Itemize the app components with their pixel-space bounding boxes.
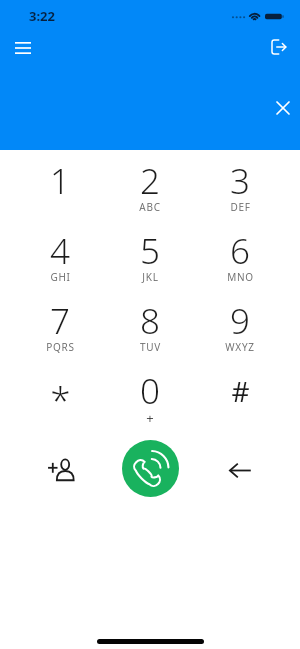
- staticText: ABC: [139, 200, 161, 214]
- staticText: DEF: [230, 200, 251, 214]
- button[interactable]: 1: [15, 150, 105, 220]
- staticText: 6: [230, 227, 250, 275]
- button[interactable]: 2: [105, 150, 195, 220]
- button[interactable]: 9: [195, 290, 285, 360]
- staticText: PQRS: [46, 340, 75, 354]
- staticText: *: [50, 374, 71, 424]
- button[interactable]: 4: [15, 220, 105, 290]
- staticText: 0: [140, 367, 160, 415]
- staticText: 7: [50, 297, 70, 345]
- staticText: 4: [50, 227, 70, 275]
- button[interactable]: Log out: [263, 31, 295, 63]
- staticText: JKL: [142, 270, 159, 284]
- button[interactable]: 5: [105, 220, 195, 290]
- button[interactable]: Add contact: [34, 443, 86, 495]
- button[interactable]: #: [195, 360, 285, 430]
- staticText: 5: [140, 227, 160, 275]
- staticText: 3:22: [29, 7, 55, 25]
- staticText: WXYZ: [225, 340, 255, 354]
- staticText: 1: [50, 157, 70, 205]
- button[interactable]: 0: [105, 360, 195, 430]
- button[interactable]: 6: [195, 220, 285, 290]
- button[interactable]: Close: [267, 92, 298, 123]
- staticText: GHI: [50, 270, 71, 284]
- staticText: MNO: [227, 270, 254, 284]
- button[interactable]: *: [15, 360, 105, 430]
- staticText: TUV: [140, 340, 161, 354]
- staticText: +: [146, 409, 154, 427]
- staticText: 8: [140, 297, 160, 345]
- staticText: 3: [230, 157, 250, 205]
- staticText: 2: [140, 157, 160, 205]
- button[interactable]: 8: [105, 290, 195, 360]
- button[interactable]: 3: [195, 150, 285, 220]
- button[interactable]: Backspace: [214, 443, 266, 495]
- staticText: 9: [230, 297, 250, 345]
- button[interactable]: Menu: [7, 32, 38, 63]
- button[interactable]: 7: [15, 290, 105, 360]
- staticText: #: [231, 372, 250, 410]
- button[interactable]: Call: [122, 440, 179, 497]
